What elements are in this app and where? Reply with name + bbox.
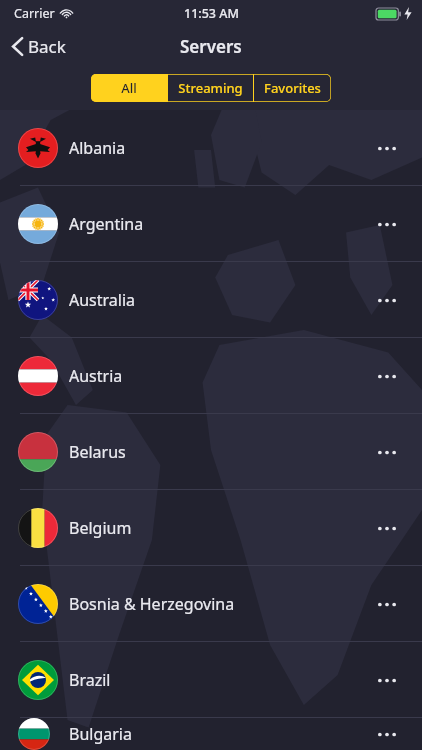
button[interactable]: Argentina bbox=[0, 186, 422, 262]
staticText: Carrier bbox=[14, 5, 55, 22]
button[interactable]: More options for Brazil bbox=[370, 663, 404, 697]
staticText: Bulgaria bbox=[69, 723, 132, 745]
button[interactable]: More options for Belarus bbox=[370, 435, 404, 469]
staticText: Bosnia & Herzegovina bbox=[69, 593, 235, 615]
staticText: 11:53 AM bbox=[184, 5, 239, 22]
button[interactable]: Austria bbox=[0, 338, 422, 414]
button[interactable]: More options for Australia bbox=[370, 283, 404, 317]
button[interactable]: More options for Albania bbox=[370, 131, 404, 165]
button[interactable]: Favorites bbox=[254, 74, 331, 102]
button[interactable]: Belgium bbox=[0, 490, 422, 566]
button[interactable]: Brazil bbox=[0, 642, 422, 718]
button[interactable]: Australia bbox=[0, 262, 422, 338]
staticText: Albania bbox=[69, 137, 126, 159]
staticText: All bbox=[121, 79, 137, 97]
button[interactable]: More options for Austria bbox=[370, 359, 404, 393]
button[interactable]: More options for Belgium bbox=[370, 511, 404, 545]
staticText: Favorites bbox=[264, 79, 321, 97]
button[interactable]: Streaming bbox=[168, 74, 253, 102]
staticText: Argentina bbox=[69, 213, 144, 235]
staticText: Australia bbox=[69, 289, 136, 311]
button[interactable]: All bbox=[91, 74, 167, 102]
staticText: Streaming bbox=[178, 79, 243, 97]
button[interactable]: More options for Argentina bbox=[370, 207, 404, 241]
staticText: Belarus bbox=[69, 441, 126, 463]
button[interactable]: More options for Bulgaria bbox=[370, 718, 404, 750]
staticText: Back bbox=[28, 35, 66, 58]
button[interactable]: More options for Bosnia & Herzegovina bbox=[370, 587, 404, 621]
button[interactable]: Albania bbox=[0, 110, 422, 186]
staticText: Belgium bbox=[69, 517, 132, 539]
button[interactable]: Belarus bbox=[0, 414, 422, 490]
button[interactable]: Bulgaria bbox=[0, 718, 422, 750]
button[interactable]: Back bbox=[0, 29, 78, 64]
staticText: Austria bbox=[69, 365, 123, 387]
staticText: Brazil bbox=[69, 669, 111, 691]
button[interactable]: Bosnia & Herzegovina bbox=[0, 566, 422, 642]
staticText: Servers bbox=[180, 35, 242, 58]
